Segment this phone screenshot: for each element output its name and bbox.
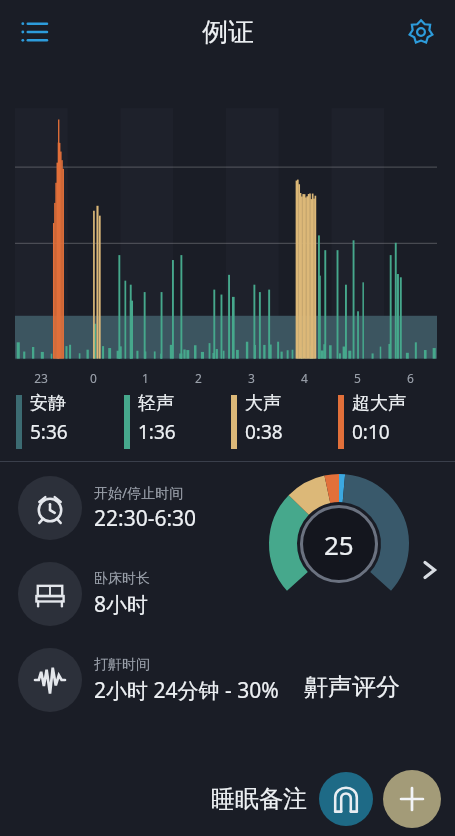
staticText: 1:36 <box>138 419 176 445</box>
staticText: 超大声 <box>352 392 406 415</box>
staticText: 0:38 <box>245 419 283 445</box>
button[interactable]: Add <box>383 770 441 828</box>
button[interactable]: Menu <box>12 10 56 54</box>
staticText: 鼾声评分 <box>304 672 400 702</box>
staticText: 0:10 <box>352 419 390 445</box>
button[interactable]: Mouthpiece <box>319 772 373 826</box>
staticText: 5 <box>354 370 361 386</box>
staticText: 0 <box>90 370 97 386</box>
button[interactable]: Sleep score gauge <box>269 474 409 614</box>
button[interactable]: 睡眠备注 <box>211 784 307 814</box>
button[interactable]: 卧床时长 <box>18 562 455 626</box>
staticText: 6 <box>407 370 414 386</box>
button[interactable]: 大声 <box>231 392 338 449</box>
staticText: 轻声 <box>138 392 174 415</box>
staticText: 2 <box>195 370 202 386</box>
staticText: 开始/停止时间 <box>94 483 184 502</box>
button[interactable]: Next <box>411 552 447 588</box>
staticText: 打鼾时间 <box>94 656 150 674</box>
staticText: 22:30-6:30 <box>94 504 197 533</box>
staticText: 2小时 24分钟 - 30% <box>94 676 279 705</box>
staticText: 例证 <box>202 16 254 49</box>
button[interactable]: 开始/停止时间 <box>18 476 455 540</box>
button[interactable]: 打鼾时间 <box>18 648 455 712</box>
staticText: 5:36 <box>30 419 68 445</box>
staticText: 安静 <box>30 392 66 415</box>
staticText: 1 <box>142 370 149 386</box>
staticText: 23 <box>34 370 48 386</box>
button[interactable]: 轻声 <box>124 392 231 449</box>
staticText: 卧床时长 <box>94 570 150 588</box>
staticText: 8小时 <box>94 590 149 619</box>
button[interactable]: 超大声 <box>338 392 445 449</box>
button[interactable]: Settings <box>399 10 443 54</box>
button[interactable]: 安静 <box>16 392 124 449</box>
staticText: 4 <box>301 370 308 386</box>
staticText: 3 <box>248 370 255 386</box>
staticText: 25 <box>324 527 354 562</box>
staticText: 大声 <box>245 392 281 415</box>
